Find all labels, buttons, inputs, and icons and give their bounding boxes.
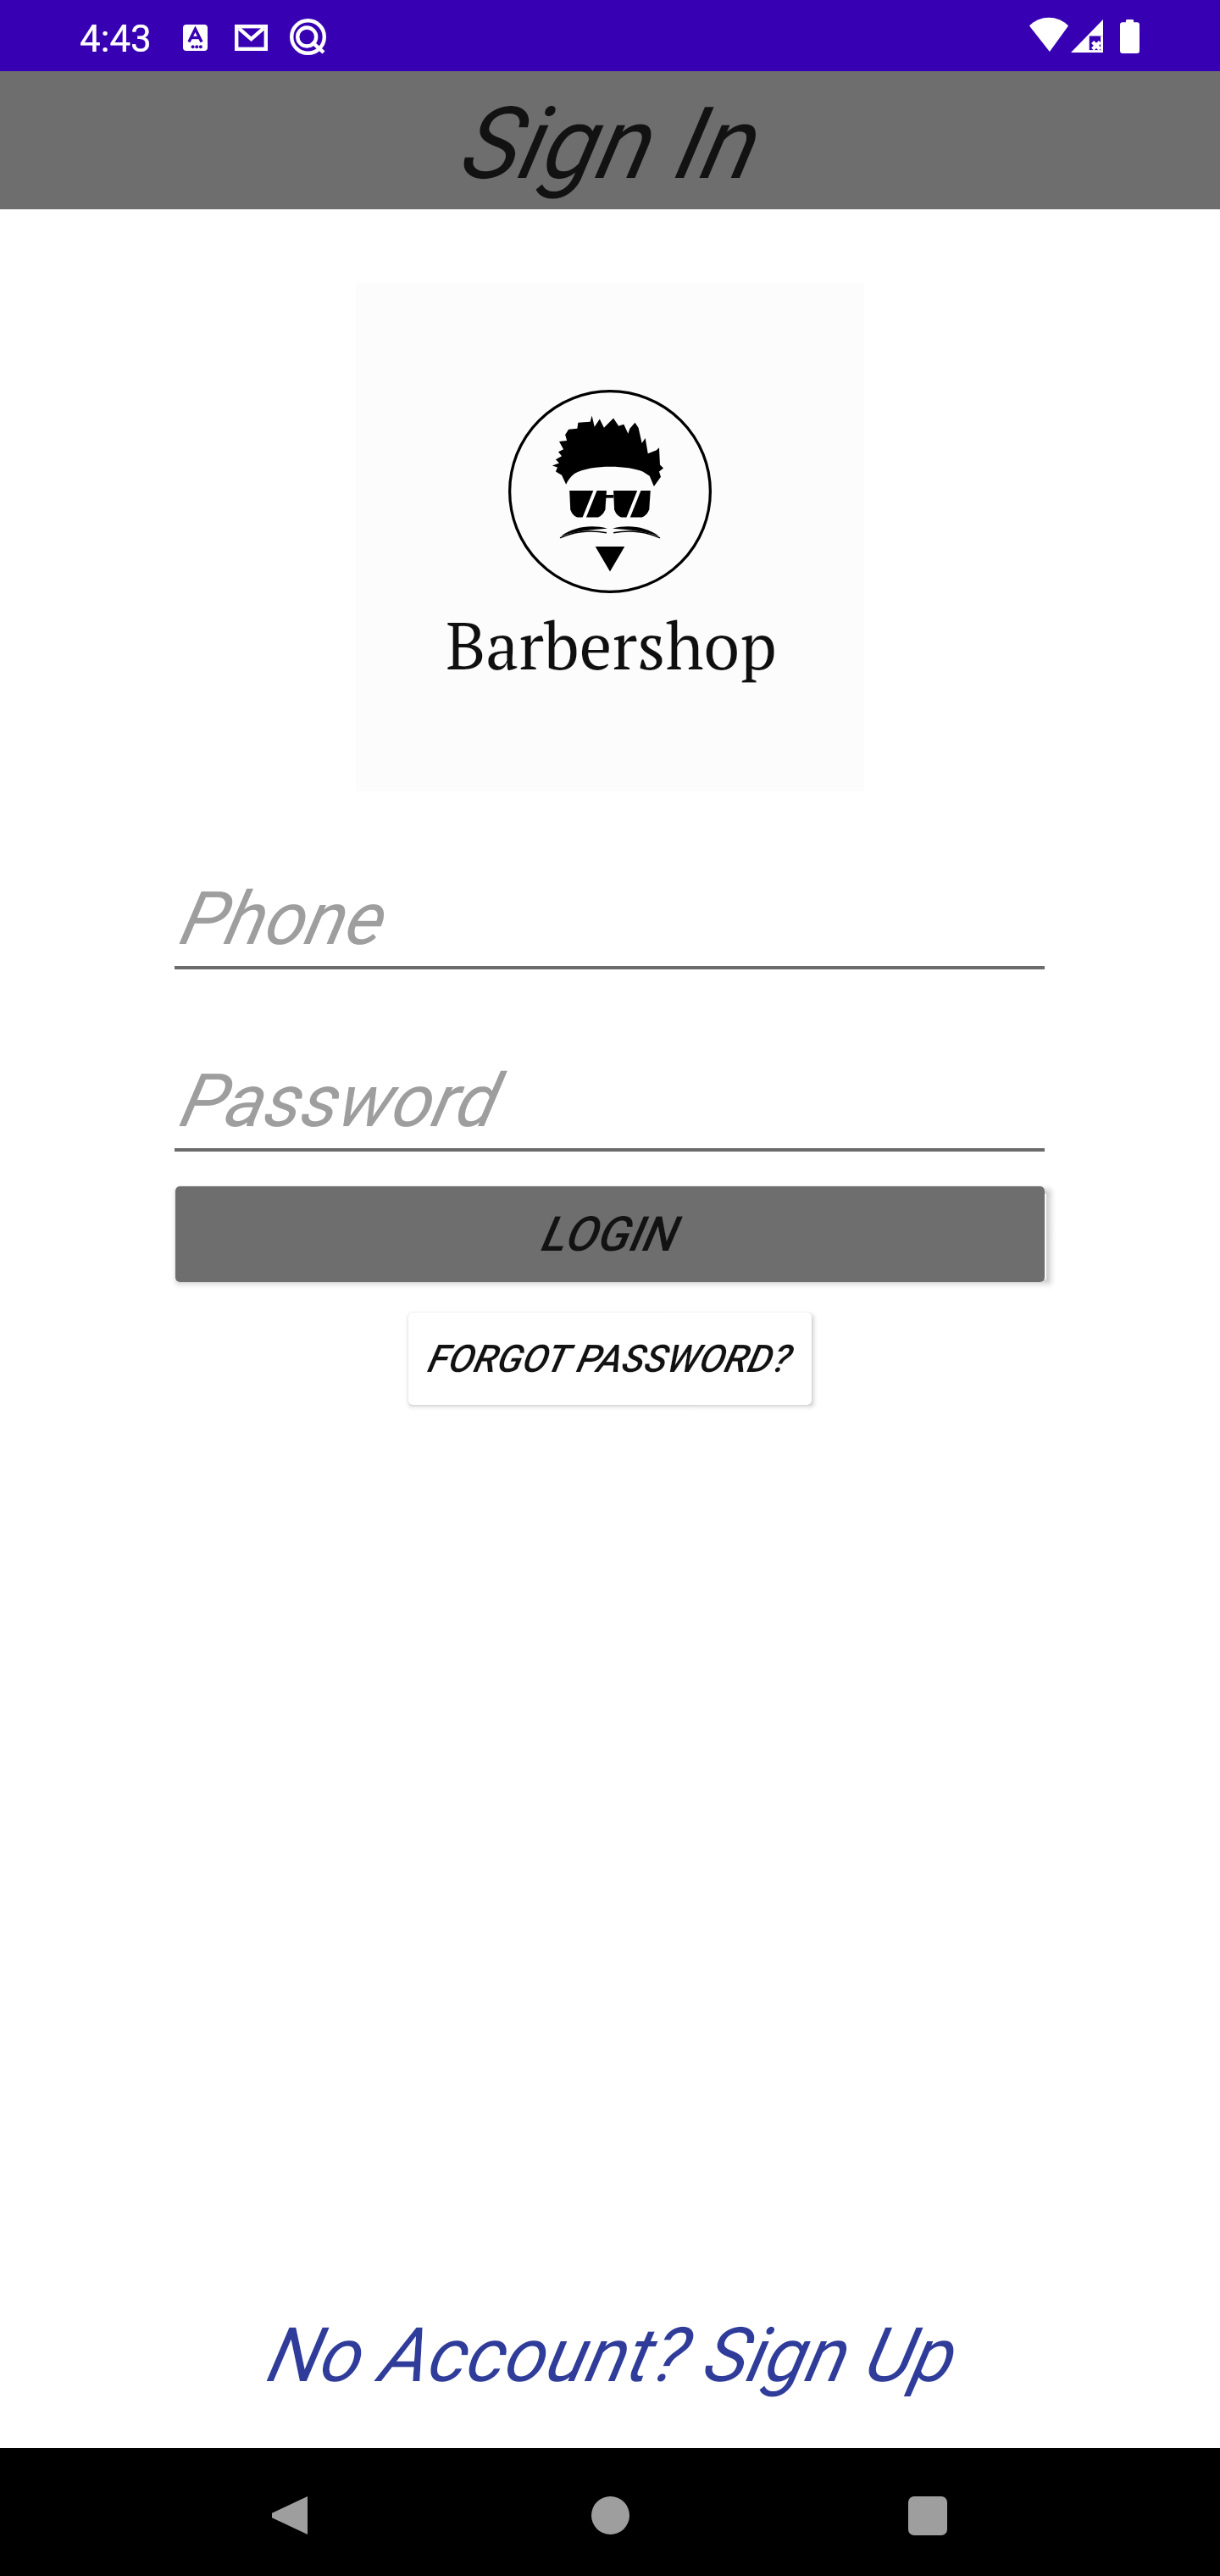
staticText: 4:43 [80, 17, 152, 61]
button[interactable]: Phone [175, 865, 1045, 969]
button[interactable]: LOGIN [175, 1186, 1045, 1282]
staticText: No Account? Sign Up [264, 2311, 951, 2399]
button[interactable]: FORGOT PASSWORD? [408, 1313, 812, 1405]
button[interactable]: Password [175, 1047, 1045, 1152]
staticText: FORGOT PASSWORD? [426, 1336, 789, 1381]
staticText: LOGIN [540, 1206, 674, 1263]
staticText: Password [177, 1058, 493, 1144]
staticText: Barbershop [446, 602, 777, 688]
button[interactable]: Recent apps [864, 2448, 991, 2576]
button[interactable]: Home [546, 2448, 674, 2576]
staticText: Sign In [457, 86, 751, 203]
staticText: Phone [177, 875, 380, 962]
button[interactable]: Back [225, 2448, 352, 2576]
button[interactable]: No Account? Sign Up [0, 2283, 1220, 2427]
